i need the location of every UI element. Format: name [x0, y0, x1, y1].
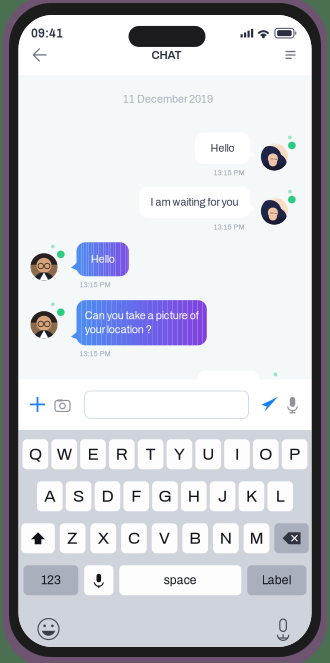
- staticText: your location ?: [85, 324, 152, 336]
- staticText: R: [116, 445, 128, 463]
- button[interactable]: J: [210, 481, 235, 511]
- button[interactable]: P: [282, 439, 307, 469]
- staticText: 13:15 PM: [79, 281, 110, 289]
- button[interactable]: Dictate: [270, 616, 296, 642]
- staticText: F: [131, 487, 141, 505]
- staticText: J: [218, 487, 227, 505]
- button[interactable]: Z: [60, 523, 85, 553]
- staticText: Q: [29, 445, 42, 463]
- button[interactable]: Delete: [274, 523, 309, 553]
- button[interactable]: G: [152, 481, 178, 511]
- button[interactable]: X: [90, 523, 116, 553]
- button[interactable]: Camera: [50, 392, 74, 416]
- staticText: O: [259, 445, 272, 463]
- button[interactable]: Record voice message: [282, 392, 302, 416]
- staticText: 09:41: [31, 27, 63, 40]
- staticText: U: [202, 445, 214, 463]
- button[interactable]: Dictate: [84, 565, 113, 595]
- staticText: Z: [67, 529, 78, 547]
- button[interactable]: Add attachment: [25, 392, 49, 416]
- staticText: B: [189, 529, 201, 547]
- button[interactable]: T: [138, 439, 163, 469]
- staticText: 13:15 PM: [213, 223, 244, 231]
- staticText: 13:15 PM: [213, 169, 244, 177]
- staticText: 11 December 2019: [123, 93, 213, 105]
- button[interactable]: I am waiting for you: [139, 186, 256, 218]
- button[interactable]: Emoji: [35, 616, 61, 642]
- button[interactable]: Hello: [195, 132, 256, 164]
- button[interactable]: Y: [167, 439, 192, 469]
- staticText: L: [276, 487, 285, 505]
- button[interactable]: Shift: [21, 523, 55, 553]
- button[interactable]: Can you take a picture of: [71, 300, 207, 345]
- button[interactable]: U: [195, 439, 221, 469]
- button[interactable]: Send: [257, 392, 281, 416]
- staticText: X: [98, 529, 109, 547]
- staticText: A: [44, 487, 55, 505]
- button[interactable]: B: [182, 523, 208, 553]
- staticText: Can you take a picture of: [85, 310, 199, 321]
- button[interactable]: C: [121, 523, 147, 553]
- button[interactable]: E: [80, 439, 106, 469]
- staticText: Label: [262, 574, 292, 587]
- button[interactable]: I: [224, 439, 250, 469]
- staticText: P: [289, 445, 300, 463]
- staticText: C: [128, 529, 140, 547]
- button[interactable]: R: [109, 439, 135, 469]
- staticText: K: [246, 487, 257, 505]
- staticText: Y: [174, 445, 185, 463]
- staticText: I: [235, 445, 239, 463]
- staticText: Hello: [210, 142, 234, 154]
- button[interactable]: V: [152, 523, 177, 553]
- button[interactable]: A: [37, 481, 63, 511]
- button[interactable]: L: [267, 481, 293, 511]
- button[interactable]: D: [95, 481, 120, 511]
- staticText: G: [158, 487, 171, 505]
- button[interactable]: Back: [27, 44, 51, 66]
- button[interactable]: K: [239, 481, 264, 511]
- button[interactable]: space: [119, 565, 241, 595]
- button[interactable]: F: [123, 481, 149, 511]
- staticText: 13:15 PM: [79, 350, 110, 358]
- button[interactable]: S: [66, 481, 91, 511]
- staticText: H: [188, 487, 200, 505]
- button[interactable]: 123: [23, 565, 78, 595]
- button[interactable]: Message: [84, 391, 248, 418]
- button[interactable]: O: [253, 439, 279, 469]
- staticText: space: [164, 574, 197, 587]
- staticText: D: [101, 487, 113, 505]
- staticText: V: [159, 529, 170, 547]
- button[interactable]: N: [213, 523, 239, 553]
- button[interactable]: W: [51, 439, 77, 469]
- staticText: 123: [41, 574, 61, 587]
- staticText: Hello: [91, 253, 115, 265]
- staticText: E: [87, 445, 98, 463]
- staticText: M: [249, 529, 263, 547]
- staticText: S: [73, 487, 84, 505]
- staticText: W: [57, 445, 72, 463]
- staticText: T: [146, 445, 156, 463]
- button[interactable]: Label: [247, 565, 306, 595]
- button[interactable]: H: [181, 481, 207, 511]
- staticText: N: [220, 529, 232, 547]
- staticText: I am waiting for you: [151, 196, 239, 208]
- button[interactable]: Q: [23, 439, 48, 469]
- button[interactable]: Hello: [71, 242, 129, 276]
- staticText: CHAT: [151, 49, 181, 61]
- button[interactable]: Menu: [280, 44, 300, 66]
- button[interactable]: M: [244, 523, 269, 553]
